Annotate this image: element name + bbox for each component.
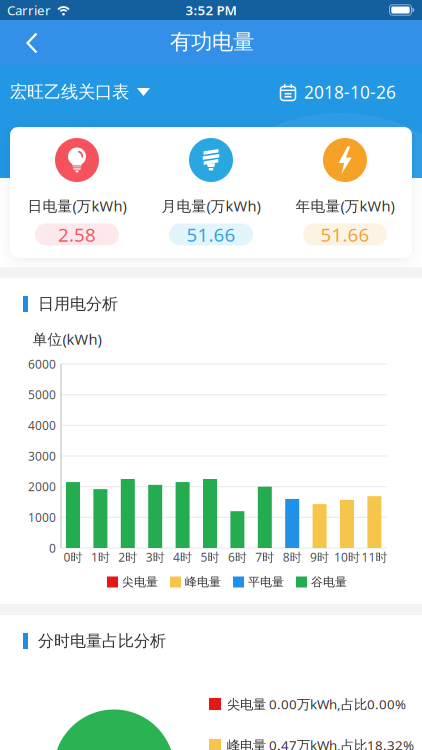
staticText: 单位(kWh) (32, 329, 101, 349)
button[interactable]: Back (16, 24, 48, 61)
staticText: 谷电量 (311, 575, 347, 589)
staticText: 年电量(万kWh) (295, 196, 394, 215)
staticText: 6000 (28, 356, 56, 372)
staticText: 有功电量 (170, 29, 254, 55)
staticText: 月电量(万kWh) (161, 196, 260, 215)
staticText: 日用电分析 (38, 294, 118, 314)
staticText: 日电量(万kWh) (27, 196, 126, 215)
staticText: 宏旺乙线关口表 (10, 81, 129, 103)
staticText: 尖电量 (122, 575, 158, 589)
staticText: 峰电量 0.47万kWh,占比18.32% (227, 736, 414, 750)
staticText: 分时电量占比分析 (38, 631, 166, 651)
staticText: 尖电量 0.00万kWh,占比0.00% (227, 695, 406, 713)
staticText: Carrier (7, 1, 51, 19)
staticText: 峰电量 (185, 575, 221, 589)
staticText: 7时 (255, 549, 274, 565)
staticText: 1时 (91, 549, 110, 565)
staticText: 4000 (28, 417, 56, 433)
staticText: 平电量 (248, 575, 284, 589)
staticText: 1000 (28, 509, 56, 525)
staticText: 5时 (200, 549, 219, 565)
staticText: 11时 (361, 549, 387, 565)
staticText: 4时 (173, 549, 192, 565)
staticText: 2000 (28, 479, 56, 495)
staticText: 2018-10-26 (304, 80, 396, 103)
staticText: 9时 (310, 549, 329, 565)
staticText: 0时 (63, 549, 82, 565)
staticText: 2时 (118, 549, 137, 565)
staticText: 51.66 (320, 222, 369, 247)
button[interactable]: 选择日期 (280, 80, 422, 103)
staticText: 6时 (228, 549, 247, 565)
staticText: 3000 (28, 448, 56, 464)
button[interactable]: 宏旺乙线关口表 (0, 81, 150, 103)
staticText: 2.58 (58, 222, 96, 247)
staticText: 3:52 PM (185, 1, 236, 19)
staticText: 3时 (146, 549, 165, 565)
staticText: 0 (49, 540, 56, 556)
staticText: 5000 (28, 387, 56, 403)
staticText: 8时 (283, 549, 302, 565)
staticText: 51.66 (186, 222, 235, 247)
staticText: 10时 (334, 549, 360, 565)
